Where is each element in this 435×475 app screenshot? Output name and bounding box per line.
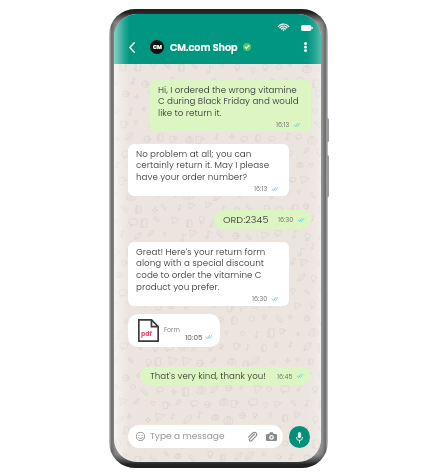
- staticText: 16:45: [277, 372, 293, 381]
- staticText: 16:30: [252, 294, 268, 303]
- staticText: ORD:2345: [223, 213, 269, 226]
- button[interactable]: pdf: [128, 314, 220, 347]
- button[interactable]: Type a message: [128, 425, 283, 448]
- button[interactable]: That's very kind, thank you!: [140, 367, 311, 385]
- staticText: Great! Here's your return form along wit…: [136, 246, 278, 293]
- button[interactable]: More options: [298, 38, 312, 56]
- staticText: CM: [153, 44, 162, 51]
- other: Camera: [266, 432, 277, 441]
- staticText: 16:30: [278, 215, 294, 224]
- staticText: 16:13: [276, 120, 290, 129]
- button[interactable]: Record voice message: [289, 426, 310, 448]
- staticText: Hi, I ordered the wrong vitamine C durin…: [158, 84, 300, 119]
- button[interactable]: Back: [125, 38, 139, 56]
- button[interactable]: No problem at all; you can certainly ret…: [128, 144, 289, 196]
- staticText: pdf: [141, 329, 152, 338]
- staticText: 10:05: [185, 332, 203, 342]
- staticText: Type a message: [150, 430, 225, 443]
- staticText: CM.com Shop: [170, 41, 238, 54]
- button[interactable]: Great! Here's your return form along wit…: [128, 242, 289, 306]
- staticText: 16:13: [254, 184, 268, 193]
- button[interactable]: ORD:2345: [214, 210, 311, 229]
- staticText: That's very kind, thank you!: [150, 370, 266, 382]
- other: Attach file: [247, 432, 257, 442]
- staticText: Form: [164, 325, 180, 334]
- staticText: No problem at all; you can certainly ret…: [136, 148, 278, 183]
- button[interactable]: Hi, I ordered the wrong vitamine C durin…: [150, 80, 311, 132]
